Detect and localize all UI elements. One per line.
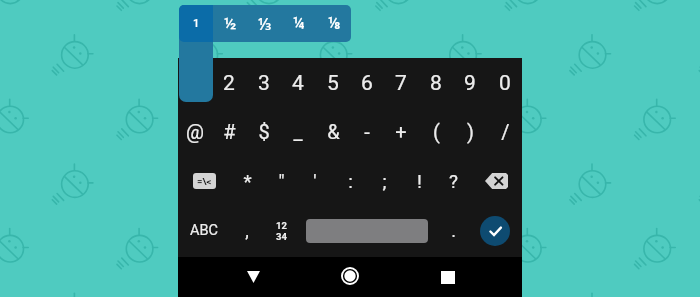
staticText: @ bbox=[186, 120, 204, 143]
staticText: ⅓ bbox=[258, 13, 272, 35]
button[interactable]: Space bbox=[298, 206, 436, 255]
button[interactable]: ? bbox=[436, 156, 470, 205]
button[interactable]: ! bbox=[402, 156, 436, 205]
staticText: ¼ bbox=[293, 14, 305, 33]
button[interactable]: 2 bbox=[212, 59, 246, 108]
button[interactable]: ⅓ bbox=[248, 5, 282, 42]
button[interactable]: , bbox=[230, 206, 264, 255]
button[interactable]: / bbox=[488, 107, 522, 156]
staticText: . bbox=[451, 220, 456, 241]
button[interactable]: ' bbox=[298, 156, 332, 205]
button[interactable]: ABC bbox=[178, 206, 230, 255]
button[interactable]: & bbox=[316, 107, 350, 156]
button[interactable]: $ bbox=[247, 107, 281, 156]
button[interactable]: Enter bbox=[470, 206, 522, 255]
staticText: 34 bbox=[276, 231, 287, 242]
staticText: 0 bbox=[499, 71, 511, 96]
staticText: 9 bbox=[464, 71, 476, 96]
button[interactable]: 4 bbox=[281, 59, 315, 108]
staticText: 3 bbox=[258, 71, 270, 96]
button[interactable]: 1 bbox=[178, 59, 212, 108]
staticText: , bbox=[245, 220, 249, 241]
button[interactable]: . bbox=[436, 206, 470, 255]
staticText: =\< bbox=[197, 176, 212, 187]
staticText: & bbox=[327, 120, 340, 143]
staticText: # bbox=[223, 120, 236, 143]
staticText: _ bbox=[293, 120, 303, 143]
staticText: 6 bbox=[361, 71, 373, 96]
button[interactable]: Back bbox=[233, 257, 273, 297]
staticText: ? bbox=[449, 170, 458, 192]
button[interactable]: Backspace bbox=[470, 156, 522, 205]
button[interactable]: 0 bbox=[488, 59, 522, 108]
button[interactable]: 3 bbox=[247, 59, 281, 108]
button[interactable] bbox=[179, 33, 213, 102]
staticText: 4 bbox=[292, 71, 304, 96]
staticText: 8 bbox=[430, 71, 442, 96]
staticText: ( bbox=[433, 120, 440, 143]
staticText: 5 bbox=[327, 71, 339, 96]
button[interactable]: : bbox=[333, 156, 367, 205]
button[interactable]: ( bbox=[419, 107, 453, 156]
staticText: 1 bbox=[193, 17, 200, 30]
staticText: ! bbox=[417, 170, 422, 192]
button[interactable]: ¼ bbox=[282, 5, 316, 42]
button[interactable]: ⅛ bbox=[317, 5, 351, 42]
button[interactable]: # bbox=[212, 107, 246, 156]
button[interactable]: Home bbox=[330, 256, 370, 296]
staticText: $ bbox=[258, 120, 270, 143]
staticText: 7 bbox=[395, 71, 407, 96]
button[interactable]: * bbox=[230, 156, 264, 205]
button[interactable]: 8 bbox=[419, 59, 453, 108]
button[interactable]: " bbox=[264, 156, 298, 205]
staticText: ; bbox=[382, 170, 387, 192]
button[interactable]: 7 bbox=[384, 59, 418, 108]
button[interactable]: ½ bbox=[213, 5, 247, 42]
staticText: ⅛ bbox=[328, 14, 341, 33]
button[interactable]: + bbox=[384, 107, 418, 156]
button[interactable]: 1 bbox=[179, 5, 213, 42]
button[interactable]: Numbers bbox=[264, 206, 298, 255]
button[interactable]: @ bbox=[178, 107, 212, 156]
button[interactable]: _ bbox=[281, 107, 315, 156]
button[interactable]: 6 bbox=[350, 59, 384, 108]
button[interactable]: - bbox=[350, 107, 384, 156]
staticText: " bbox=[278, 170, 285, 192]
button[interactable]: ) bbox=[453, 107, 487, 156]
button[interactable]: Recents bbox=[428, 257, 468, 297]
staticText: ) bbox=[467, 120, 474, 143]
staticText: / bbox=[501, 120, 510, 143]
staticText: 2 bbox=[223, 71, 235, 96]
staticText: ABC bbox=[190, 222, 218, 239]
button[interactable]: Symbols bbox=[178, 156, 230, 205]
staticText: 12 bbox=[276, 220, 287, 231]
button[interactable]: ; bbox=[367, 156, 401, 205]
staticText: : bbox=[348, 170, 353, 192]
button[interactable]: 9 bbox=[453, 59, 487, 108]
staticText: ½ bbox=[224, 14, 237, 33]
staticText: * bbox=[243, 170, 252, 192]
button[interactable]: 5 bbox=[316, 59, 350, 108]
staticText: ' bbox=[313, 170, 317, 192]
staticText: - bbox=[364, 120, 370, 143]
staticText: + bbox=[395, 120, 407, 143]
